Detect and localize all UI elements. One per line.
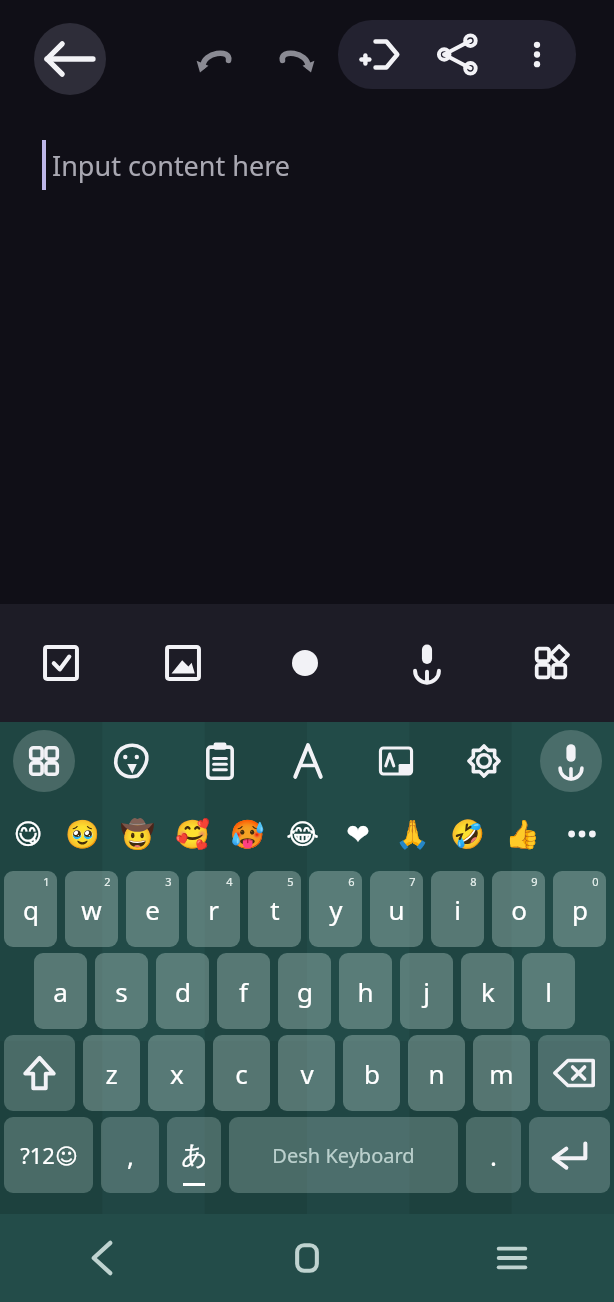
button[interactable]: Symbols	[4, 1117, 93, 1193]
staticText: h	[357, 974, 374, 1009]
button[interactable]: 🥰	[165, 800, 220, 868]
button[interactable]: t	[248, 871, 301, 947]
staticText: ❤️	[346, 818, 370, 851]
button[interactable]: Keyboard settings	[440, 722, 528, 800]
button[interactable]: Voice input	[366, 604, 488, 722]
staticText: 😋	[13, 818, 43, 851]
staticText: q	[23, 892, 39, 927]
staticText: f	[239, 974, 248, 1009]
button[interactable]: Period	[466, 1117, 521, 1193]
staticText: 🥵	[230, 818, 265, 851]
staticText: Desh Keyboard	[272, 1142, 415, 1169]
staticText: l	[545, 974, 552, 1009]
button[interactable]: f	[217, 953, 270, 1029]
staticText: m	[489, 1056, 514, 1091]
button[interactable]: More options	[498, 20, 576, 89]
staticText: 9	[531, 874, 538, 889]
button[interactable]: g	[278, 953, 331, 1029]
button[interactable]: Redo	[262, 27, 326, 91]
staticText: .	[490, 1138, 497, 1173]
button[interactable]: ❤️	[330, 800, 385, 868]
button[interactable]: a	[34, 953, 87, 1029]
staticText: v	[300, 1056, 314, 1091]
staticText: k	[481, 974, 495, 1009]
button[interactable]: o	[492, 871, 545, 947]
button[interactable]: Draw	[244, 604, 366, 722]
button[interactable]: m	[473, 1035, 530, 1111]
button[interactable]: y	[309, 871, 362, 947]
staticText: 0	[592, 874, 599, 889]
staticText: ,	[127, 1138, 134, 1173]
button[interactable]: 🥹	[55, 800, 110, 868]
button[interactable]: Comma	[101, 1117, 159, 1193]
button[interactable]: Text style	[264, 722, 352, 800]
staticText: 😂	[286, 818, 319, 851]
button[interactable]: Share	[418, 20, 498, 89]
staticText: 2	[104, 874, 111, 889]
button[interactable]: e	[126, 871, 179, 947]
staticText: i	[454, 892, 461, 927]
staticText: w	[81, 892, 102, 927]
staticText: a	[53, 974, 68, 1009]
button[interactable]: Widgets	[488, 604, 614, 722]
button[interactable]: w	[65, 871, 118, 947]
button[interactable]: u	[370, 871, 423, 947]
button[interactable]: c	[213, 1035, 270, 1111]
button[interactable]: Keyboard modes	[0, 722, 88, 800]
staticText: r	[208, 892, 219, 927]
button[interactable]: Space	[229, 1117, 458, 1193]
staticText: 6	[348, 874, 355, 889]
staticText: z	[105, 1056, 118, 1091]
button[interactable]: j	[400, 953, 453, 1029]
button[interactable]: 🤣	[440, 800, 495, 868]
button[interactable]: v	[278, 1035, 335, 1111]
button[interactable]: Shift	[4, 1035, 75, 1111]
button[interactable]: Undo	[185, 27, 249, 91]
button[interactable]: Recent apps	[409, 1214, 614, 1302]
button[interactable]: 🙏	[385, 800, 440, 868]
button[interactable]: n	[408, 1035, 465, 1111]
button[interactable]: Insert image	[122, 604, 244, 722]
button[interactable]: k	[461, 953, 514, 1029]
button[interactable]: Clipboard	[176, 722, 264, 800]
button[interactable]: Voice typing	[528, 722, 614, 800]
button[interactable]: Input content here	[0, 108, 614, 604]
button[interactable]: x	[148, 1035, 205, 1111]
button[interactable]: z	[83, 1035, 140, 1111]
button[interactable]: Backspace	[538, 1035, 610, 1111]
button[interactable]: Stickers	[88, 722, 176, 800]
staticText: 🙏	[395, 818, 430, 851]
button[interactable]: h	[339, 953, 392, 1029]
button[interactable]: 🥵	[220, 800, 275, 868]
staticText: s	[115, 974, 128, 1009]
button[interactable]: r	[187, 871, 240, 947]
button[interactable]: 😂	[275, 800, 330, 868]
button[interactable]: Back	[0, 1214, 204, 1302]
staticText: u	[388, 892, 405, 927]
button[interactable]: 🤠	[110, 800, 165, 868]
button[interactable]: s	[95, 953, 148, 1029]
button[interactable]: Home	[204, 1214, 409, 1302]
button[interactable]: More emoji	[550, 800, 614, 868]
button[interactable]: d	[156, 953, 209, 1029]
button[interactable]: b	[343, 1035, 400, 1111]
button[interactable]: Back	[34, 23, 106, 95]
button[interactable]: q	[4, 871, 57, 947]
button[interactable]: 😋	[0, 800, 55, 868]
staticText: j	[423, 974, 430, 1009]
staticText: x	[170, 1056, 184, 1091]
button[interactable]: l	[522, 953, 575, 1029]
staticText: t	[270, 892, 280, 927]
button[interactable]: Checklist	[0, 604, 122, 722]
button[interactable]: 👍	[495, 800, 550, 868]
staticText: y	[329, 892, 343, 927]
staticText: p	[572, 892, 588, 927]
button[interactable]: Enter	[529, 1117, 610, 1193]
button[interactable]: Language	[167, 1117, 221, 1193]
button[interactable]: Add to note	[338, 20, 418, 89]
button[interactable]: Translate	[352, 722, 440, 800]
staticText: 🤣	[450, 818, 485, 851]
button[interactable]: i	[431, 871, 484, 947]
staticText: 4	[226, 874, 233, 889]
button[interactable]: p	[553, 871, 606, 947]
